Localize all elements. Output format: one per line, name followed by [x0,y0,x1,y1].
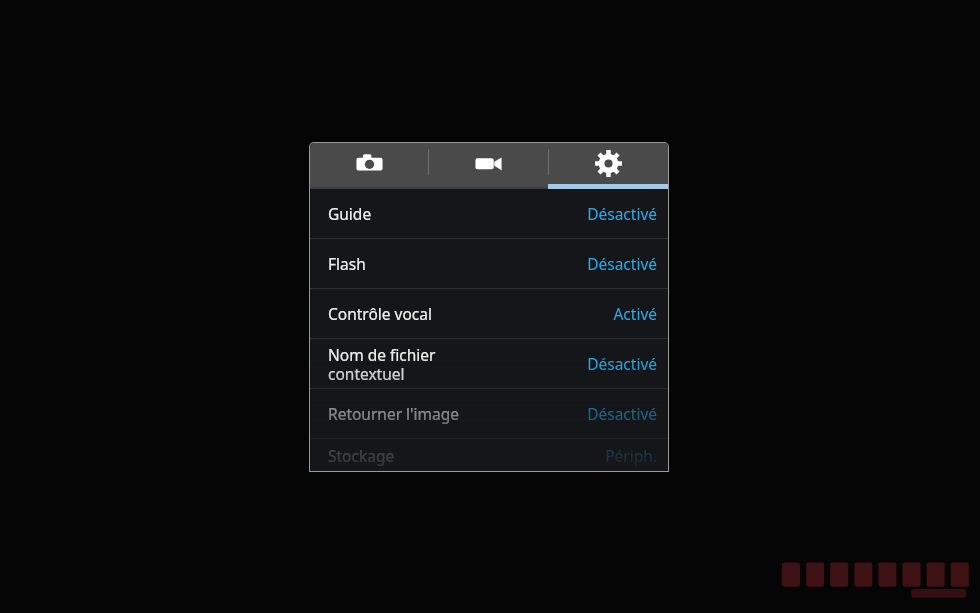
button[interactable]: Settings [549,143,668,189]
staticText: Flash [328,253,587,274]
staticText: Périph. [605,445,657,466]
staticText: Désactivé [587,403,657,424]
staticText: Activé [613,303,657,324]
staticText: Stockage [328,445,605,466]
button[interactable]: Stockage [310,439,668,471]
staticText: Désactivé [587,203,657,224]
staticText: Retourner l'image [328,403,587,424]
button[interactable]: Flash [310,239,668,288]
button[interactable]: Video mode [429,143,548,189]
button[interactable]: Nom de fichier contextuel [310,339,668,388]
staticText: Nom de fichier contextuel [328,344,587,384]
button[interactable]: Retourner l'image [310,389,668,438]
button[interactable]: Photo mode [310,143,428,189]
staticText: Contrôle vocal [328,303,613,324]
staticText: Guide [328,203,587,224]
button[interactable]: Guide [310,189,668,238]
staticText: Désactivé [587,353,657,374]
button[interactable]: Contrôle vocal [310,289,668,338]
staticText: Désactivé [587,253,657,274]
